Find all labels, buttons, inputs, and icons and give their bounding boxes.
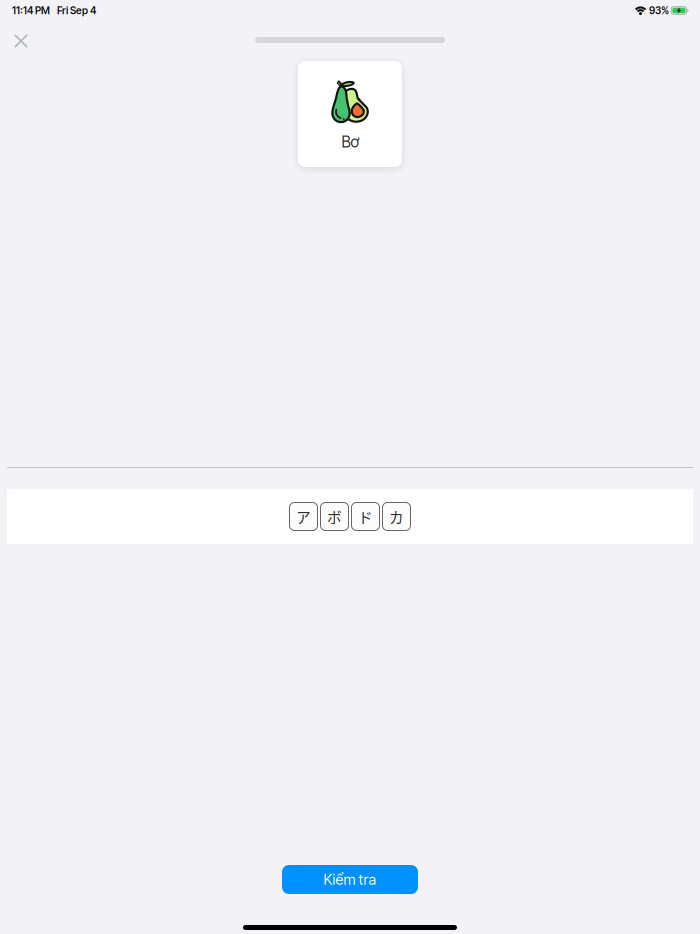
button[interactable]: Close bbox=[7, 28, 35, 54]
staticText: ド bbox=[358, 506, 373, 527]
staticText: ボ bbox=[327, 506, 342, 527]
button[interactable]: ド bbox=[351, 502, 379, 530]
staticText: ア bbox=[296, 506, 311, 527]
staticText: 11:14 PM bbox=[12, 4, 50, 17]
staticText: 93% bbox=[649, 4, 669, 17]
button[interactable]: ア bbox=[289, 502, 317, 530]
button[interactable]: Kiểm tra bbox=[282, 865, 418, 894]
staticText: Fri Sep 4 bbox=[57, 4, 96, 17]
button[interactable]: カ bbox=[382, 502, 410, 530]
staticText: Kiểm tra bbox=[323, 871, 376, 888]
staticText: Bơ bbox=[341, 133, 358, 151]
button[interactable]: ボ bbox=[320, 502, 348, 530]
staticText: カ bbox=[389, 506, 404, 527]
